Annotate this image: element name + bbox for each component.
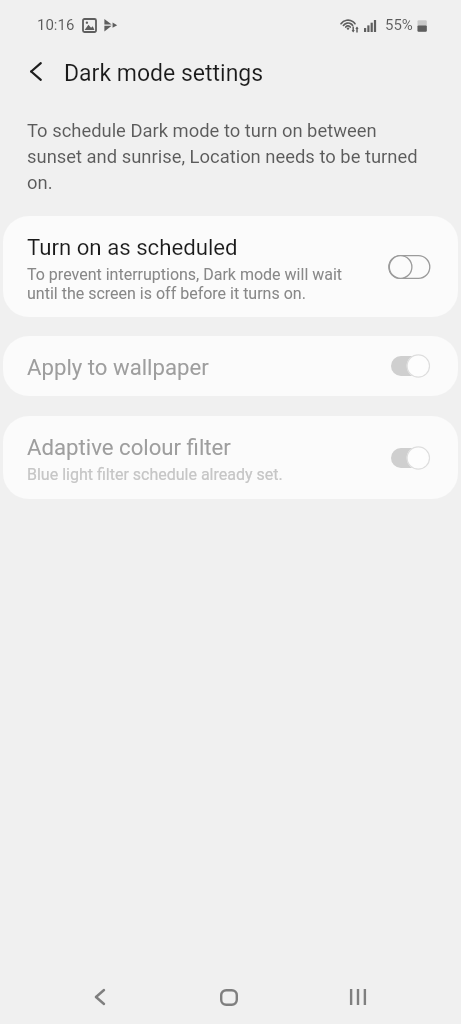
- button[interactable]: Turn on as scheduled: [3, 216, 458, 317]
- button[interactable]: Navigate up: [16, 51, 56, 91]
- staticText: Adaptive colour filter: [27, 434, 231, 461]
- button[interactable]: Back: [78, 975, 122, 1019]
- button[interactable]: Toggle switch: [388, 353, 430, 379]
- staticText: 10:16: [37, 16, 75, 34]
- staticText: Apply to wallpaper: [27, 354, 209, 381]
- button[interactable]: Toggle switch: [388, 254, 430, 280]
- button[interactable]: Adaptive colour filter: [3, 416, 458, 499]
- button[interactable]: Apply to wallpaper: [3, 336, 458, 396]
- staticText: To schedule Dark mode to turn on between…: [27, 116, 418, 194]
- staticText: 55%: [385, 16, 413, 34]
- staticText: Dark mode settings: [64, 57, 264, 87]
- staticText: Blue light filter schedule already set.: [27, 465, 362, 484]
- staticText: To prevent interruptions, Dark mode will…: [27, 265, 362, 303]
- staticText: Turn on as scheduled: [27, 234, 238, 261]
- button[interactable]: Recents: [336, 975, 380, 1019]
- button[interactable]: Toggle switch: [388, 445, 430, 471]
- button[interactable]: Home: [207, 975, 251, 1019]
